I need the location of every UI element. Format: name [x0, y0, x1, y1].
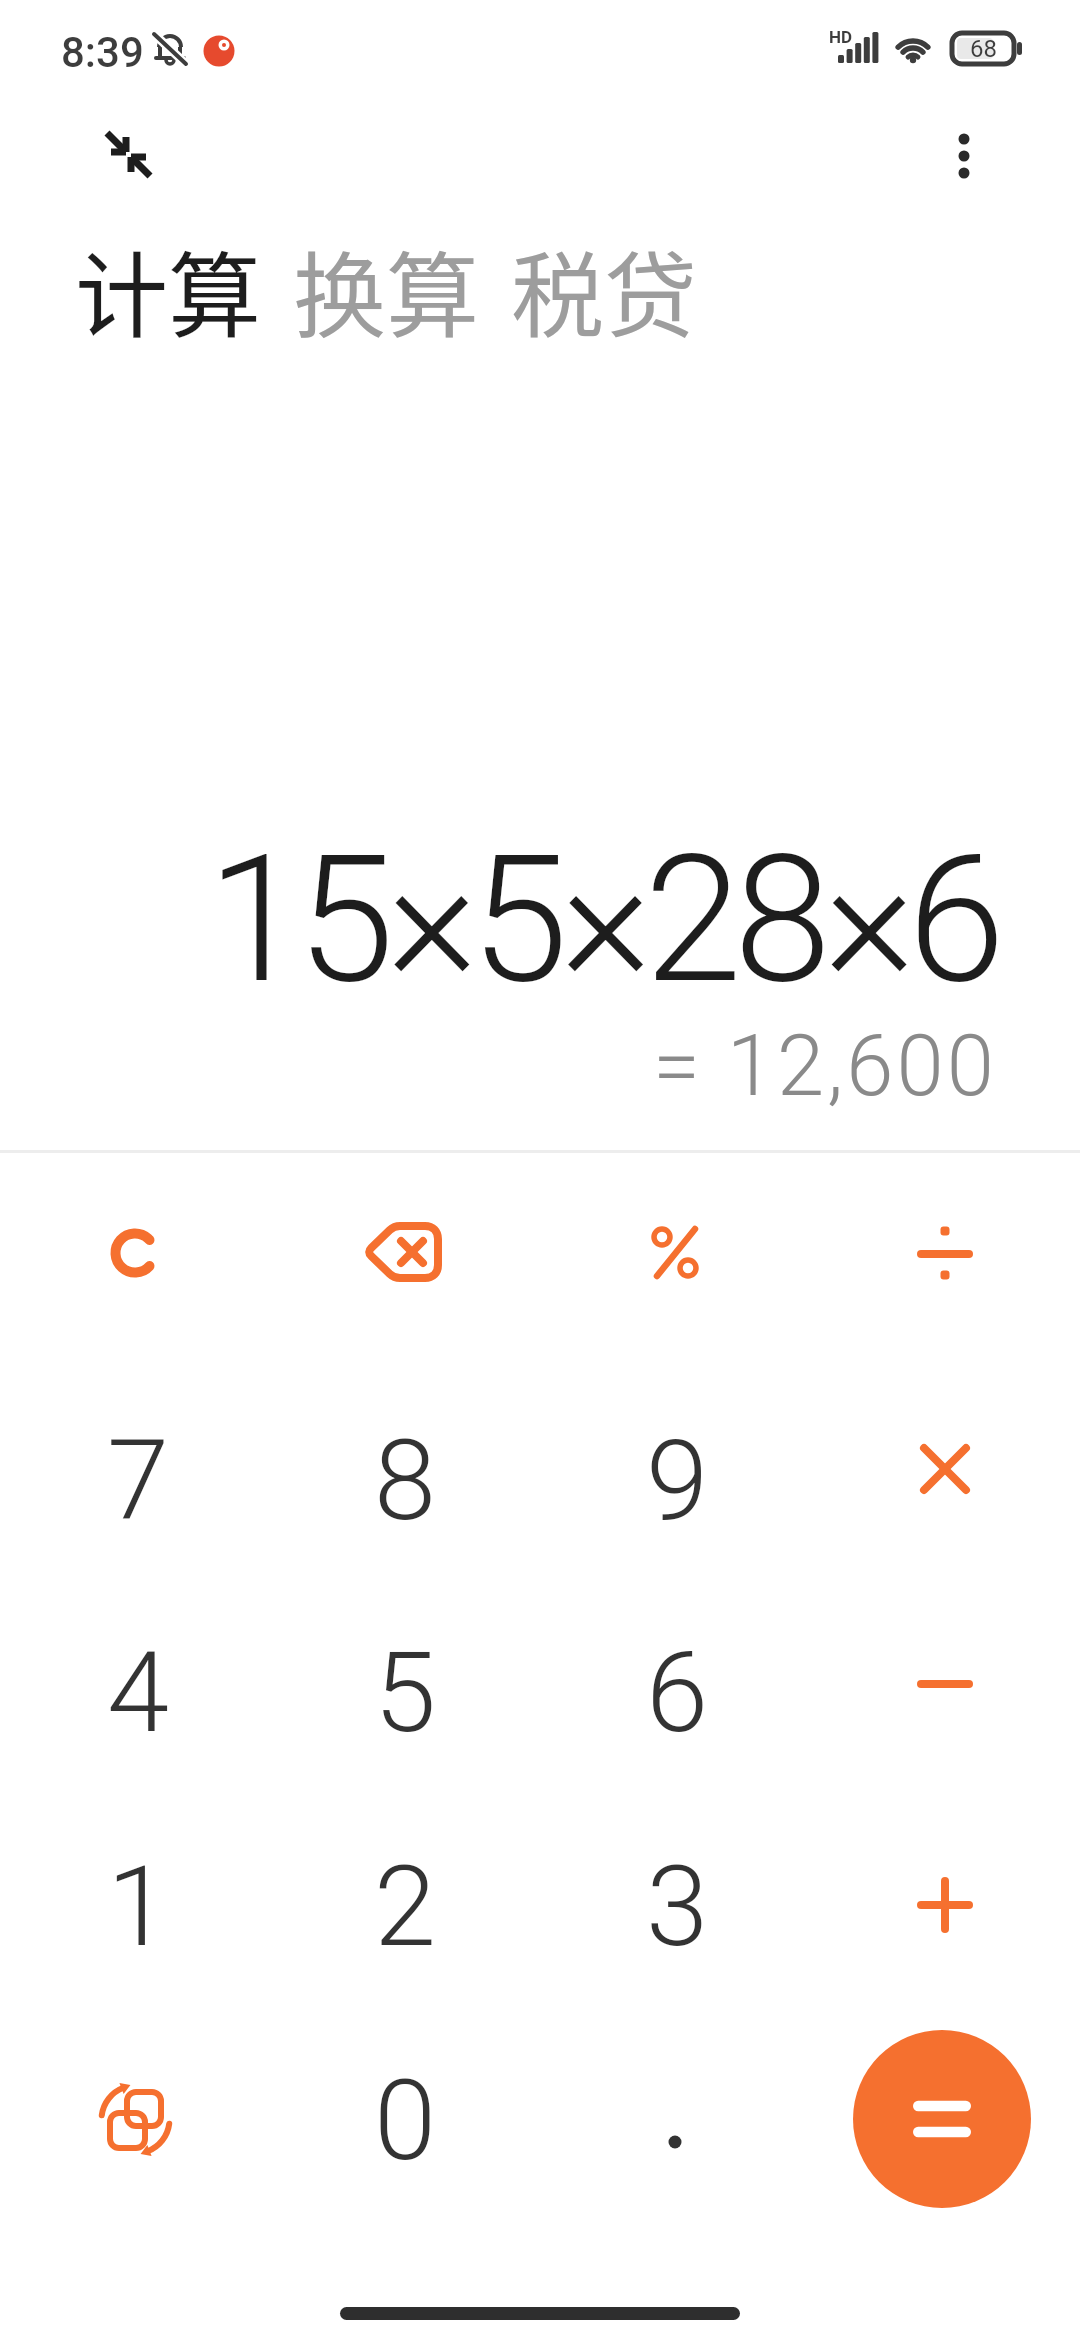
button[interactable]: 9 [547, 1380, 807, 1580]
button[interactable]: 2 [275, 1806, 535, 2006]
staticText: HD [829, 27, 853, 47]
button[interactable] [90, 115, 160, 185]
button[interactable] [815, 1153, 1075, 1353]
button[interactable]: 3 [547, 1806, 807, 2006]
button[interactable]: 4 [8, 1592, 268, 1792]
button[interactable] [5, 1153, 265, 1353]
staticText: 8:39 [61, 28, 144, 77]
staticText: 6 [646, 1627, 709, 1758]
button[interactable] [925, 105, 1005, 190]
button[interactable] [545, 2020, 805, 2220]
button[interactable]: 0 [275, 2020, 535, 2220]
staticText: 68 [970, 35, 997, 63]
button[interactable]: 8 [275, 1380, 535, 1580]
button[interactable]: 换算 [293, 222, 479, 357]
button[interactable]: 1 [8, 1806, 268, 2006]
staticText: = 12,600 [653, 1016, 997, 1116]
button[interactable]: 7 [8, 1380, 268, 1580]
staticText: 3 [646, 1841, 709, 1972]
button[interactable] [5, 2020, 265, 2220]
staticText: 4 [107, 1627, 170, 1758]
staticText: 1 [107, 1841, 170, 1972]
button[interactable] [815, 1806, 1075, 2006]
staticText: 2 [374, 1841, 437, 1972]
button[interactable] [815, 1592, 1075, 1792]
button[interactable]: 计算 [75, 222, 261, 357]
button[interactable] [545, 1153, 805, 1353]
button[interactable]: 5 [275, 1592, 535, 1792]
button[interactable]: 6 [547, 1592, 807, 1792]
button[interactable] [275, 1153, 535, 1353]
button[interactable]: 税贷 [511, 222, 697, 357]
staticText: 8 [374, 1415, 437, 1546]
staticText: 15×5×28×6 [207, 817, 998, 1017]
staticText: 5 [374, 1627, 437, 1758]
staticText: 9 [646, 1415, 709, 1546]
button[interactable] [815, 1376, 1075, 1576]
button[interactable] [853, 2030, 1031, 2208]
staticText: 0 [374, 2055, 437, 2186]
staticText: 7 [107, 1415, 170, 1546]
